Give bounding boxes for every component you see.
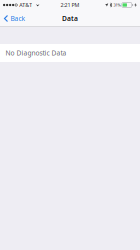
button[interactable]: No Diagnostic Data bbox=[0, 44, 140, 62]
staticText: AT&T bbox=[19, 1, 32, 9]
button[interactable]: Back bbox=[0, 10, 29, 27]
staticText: 31% bbox=[113, 2, 120, 8]
staticText: No Diagnostic Data bbox=[5, 49, 66, 57]
staticText: Data bbox=[62, 14, 78, 23]
staticText: 2:21 PM bbox=[60, 1, 79, 9]
staticText: Back bbox=[10, 14, 25, 23]
